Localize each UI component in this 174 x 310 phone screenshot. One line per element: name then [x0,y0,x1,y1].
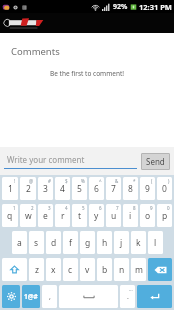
staticText: b [102,264,108,276]
staticText: # [48,178,51,184]
button[interactable]: Backspace [148,258,172,281]
staticText: 8 [128,183,133,195]
button[interactable]: k [131,231,146,254]
button[interactable]: y [89,204,104,227]
button[interactable]: q [2,204,18,227]
button[interactable]: Keyboard settings [2,285,20,308]
staticText: 1 [13,205,16,211]
button[interactable]: r [55,204,70,227]
staticText: % [81,178,85,184]
button[interactable]: d [46,231,61,254]
staticText: 8 [133,205,136,211]
staticText: q [7,210,13,222]
staticText: j [120,237,123,249]
staticText: Be the first to comment! [0,69,174,78]
staticText: 5 [82,205,85,211]
button[interactable]: Symbols [22,285,40,308]
button[interactable]: e [38,204,53,227]
staticText: * [133,178,136,184]
button[interactable]: Space [59,285,118,308]
button[interactable]: 9 [140,177,155,200]
staticText: ! [14,178,16,184]
button[interactable]: Enter [137,285,172,308]
button[interactable]: x [46,258,61,281]
staticText: ) [168,178,170,184]
staticText: e [43,210,48,222]
button[interactable]: p [157,204,172,227]
button[interactable]: 3 [38,177,53,200]
staticText: 4 [60,183,65,195]
button[interactable]: 0 [157,177,172,200]
staticText: o [145,210,151,222]
staticText: Comments [11,45,60,58]
button[interactable]: 2 [20,177,36,200]
staticText: 9 [150,205,153,211]
button[interactable]: v [80,258,95,281]
button[interactable]: t [72,204,87,227]
button[interactable]: i [123,204,138,227]
button[interactable]: a [12,231,27,254]
staticText: y [94,210,99,222]
button[interactable]: Send [141,153,170,170]
button[interactable]: w [20,204,36,227]
staticText: n [119,264,125,276]
staticText: x [51,264,56,276]
staticText: . [127,292,129,302]
staticText: t [78,210,82,222]
staticText: 7 [116,205,119,211]
staticText: u [111,210,117,222]
staticText: c [68,264,73,276]
button[interactable]: c [63,258,78,281]
button[interactable]: h [97,231,112,254]
button[interactable]: , [42,285,57,308]
staticText: a [17,237,22,249]
button[interactable]: 4 [55,177,70,200]
button[interactable]: b [97,258,112,281]
staticText: 3 [43,183,48,195]
staticText: 9 [145,183,150,195]
staticText: f [69,237,72,249]
staticText: g [85,237,91,249]
staticText: 1 [8,183,13,195]
staticText: 6 [94,183,99,195]
staticText: p [162,210,168,222]
staticText: & [115,178,119,184]
button[interactable]: s [29,231,44,254]
button[interactable]: o [140,204,155,227]
staticText: 5 [77,183,82,195]
staticText: 1@# [24,292,38,301]
button[interactable]: 8 [123,177,138,200]
button[interactable]: l [148,231,163,254]
staticText: ( [151,178,153,184]
staticText: $ [65,178,68,184]
button[interactable]: f [63,231,78,254]
staticText: 4 [65,205,68,211]
staticText: ^ [99,178,102,184]
staticText: d [51,237,57,249]
button[interactable]: m [131,258,146,281]
staticText: k [136,237,141,249]
button[interactable]: j [114,231,129,254]
button[interactable]: 6 [89,177,104,200]
button[interactable]: Circuit7 home [3,16,45,30]
staticText: 6 [99,205,102,211]
button[interactable]: 7 [106,177,121,200]
button[interactable]: g [80,231,95,254]
button[interactable]: Shift [2,258,27,281]
button[interactable]: Write your comment [4,154,137,169]
staticText: h [102,237,108,249]
button[interactable]: z [29,258,44,281]
button[interactable]: 5 [72,177,87,200]
staticText: 2 [31,205,34,211]
button[interactable]: . [120,285,135,308]
button[interactable]: 1 [2,177,18,200]
staticText: w [25,210,32,222]
button[interactable]: u [106,204,121,227]
staticText: ... [129,286,133,292]
staticText: s [34,237,39,249]
staticText: m [135,264,143,276]
staticText: z [35,264,39,276]
staticText: @ [29,178,34,184]
button[interactable]: n [114,258,129,281]
staticText: r [61,210,65,222]
